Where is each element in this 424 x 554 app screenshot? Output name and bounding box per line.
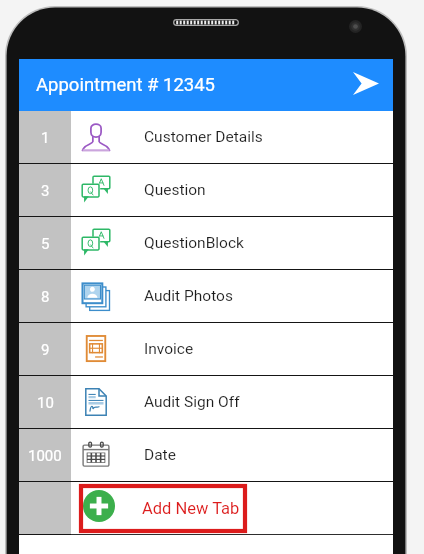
staticText: 3 xyxy=(41,182,50,200)
button[interactable]: 8 xyxy=(19,270,393,323)
button[interactable]: 10 xyxy=(19,376,393,429)
button[interactable]: 3 xyxy=(19,164,393,217)
staticText: 1 xyxy=(41,129,50,147)
staticText: 1000 xyxy=(28,447,62,465)
staticText: 10 xyxy=(37,394,54,412)
button[interactable]: Send xyxy=(334,59,393,111)
staticText: Add New Tab xyxy=(142,499,240,518)
staticText: Question xyxy=(144,181,206,199)
button[interactable]: 5 xyxy=(19,217,393,270)
staticText: 9 xyxy=(41,341,50,359)
button[interactable]: Add New Tab xyxy=(79,484,247,533)
staticText: QuestionBlock xyxy=(144,234,244,252)
staticText: Date xyxy=(144,446,176,464)
staticText: Invoice xyxy=(144,340,194,358)
staticText: 8 xyxy=(41,288,50,306)
staticText: Customer Details xyxy=(144,128,263,146)
staticText: Appointment # 12345 xyxy=(36,74,216,96)
staticText: 5 xyxy=(41,235,50,253)
button[interactable]: 9 xyxy=(19,323,393,376)
staticText: Audit Photos xyxy=(144,287,233,305)
button[interactable]: 1000 xyxy=(19,429,393,482)
staticText: Audit Sign Off xyxy=(144,393,240,411)
button[interactable]: 1 xyxy=(19,111,393,164)
